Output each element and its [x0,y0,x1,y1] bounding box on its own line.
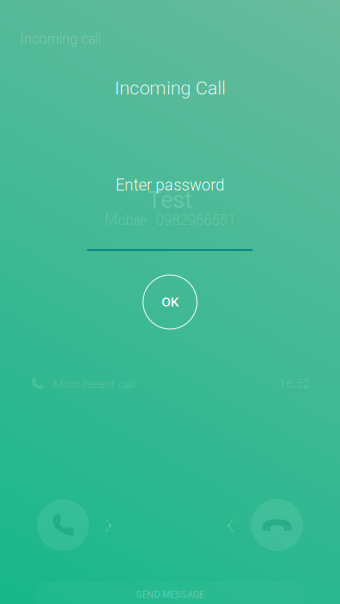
staticText: Enter password [115,176,224,194]
staticText: Incoming Call [114,77,225,99]
staticText: OK [161,294,178,310]
button[interactable]: SEND MESSAGE [35,582,304,604]
staticText: Mobile 0982966551 [104,211,235,229]
staticText: Most recent call [53,377,136,391]
staticText: Test [147,186,192,214]
staticText: 16:52 [279,377,310,391]
button[interactable]: Answer call [37,499,89,551]
button[interactable]: Decline call [251,499,303,551]
staticText: SEND MESSAGE [136,589,204,600]
staticText: Incoming call [20,31,101,47]
button[interactable]: OK [143,275,197,329]
